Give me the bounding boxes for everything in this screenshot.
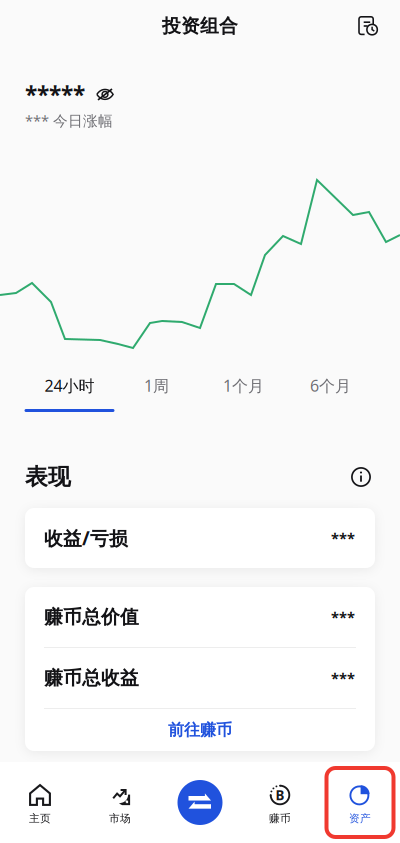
button[interactable]: 交易记录 [344,8,400,44]
staticText: *** [331,668,355,688]
staticText: 1周 [144,375,169,396]
button[interactable]: 6个月 [287,378,374,412]
button[interactable]: 显示余额 [85,82,122,107]
button[interactable]: 赚币总收益 [25,648,375,708]
staticText: 24小时 [44,375,94,396]
staticText: *** [331,528,355,548]
button[interactable]: B [240,762,320,843]
button[interactable]: 1周 [113,378,200,412]
staticText: *** [331,607,355,627]
button[interactable]: 赚币总价值 [25,587,375,647]
staticText: ***** [25,79,85,109]
staticText: 投资组合 [162,14,238,37]
staticText: 资产 [349,812,371,825]
staticText: 赚币总价值 [44,605,139,628]
button[interactable]: 前往赚币 [25,709,375,751]
button[interactable]: 市场 [80,762,160,843]
staticText: 表现 [25,463,71,491]
button[interactable]: 主页 [0,762,80,843]
button[interactable]: 资产 [320,762,400,843]
staticText: 收益/亏损 [44,526,128,550]
button[interactable]: 24小时 [26,378,113,412]
staticText: *** 今日涨幅 [25,111,113,130]
button[interactable]: 1个月 [200,378,287,412]
staticText: 前往赚币 [168,720,232,740]
staticText: 赚币 [269,812,291,825]
button[interactable]: 兑换 [160,762,240,843]
staticText: B [275,786,284,804]
staticText: 主页 [29,812,51,825]
staticText: 6个月 [310,375,351,396]
button[interactable]: 收益/亏损 [25,508,375,568]
staticText: 1个月 [223,375,264,396]
staticText: 赚币总收益 [44,666,139,689]
staticText: 市场 [109,812,131,825]
button[interactable]: 说明 [339,460,371,494]
